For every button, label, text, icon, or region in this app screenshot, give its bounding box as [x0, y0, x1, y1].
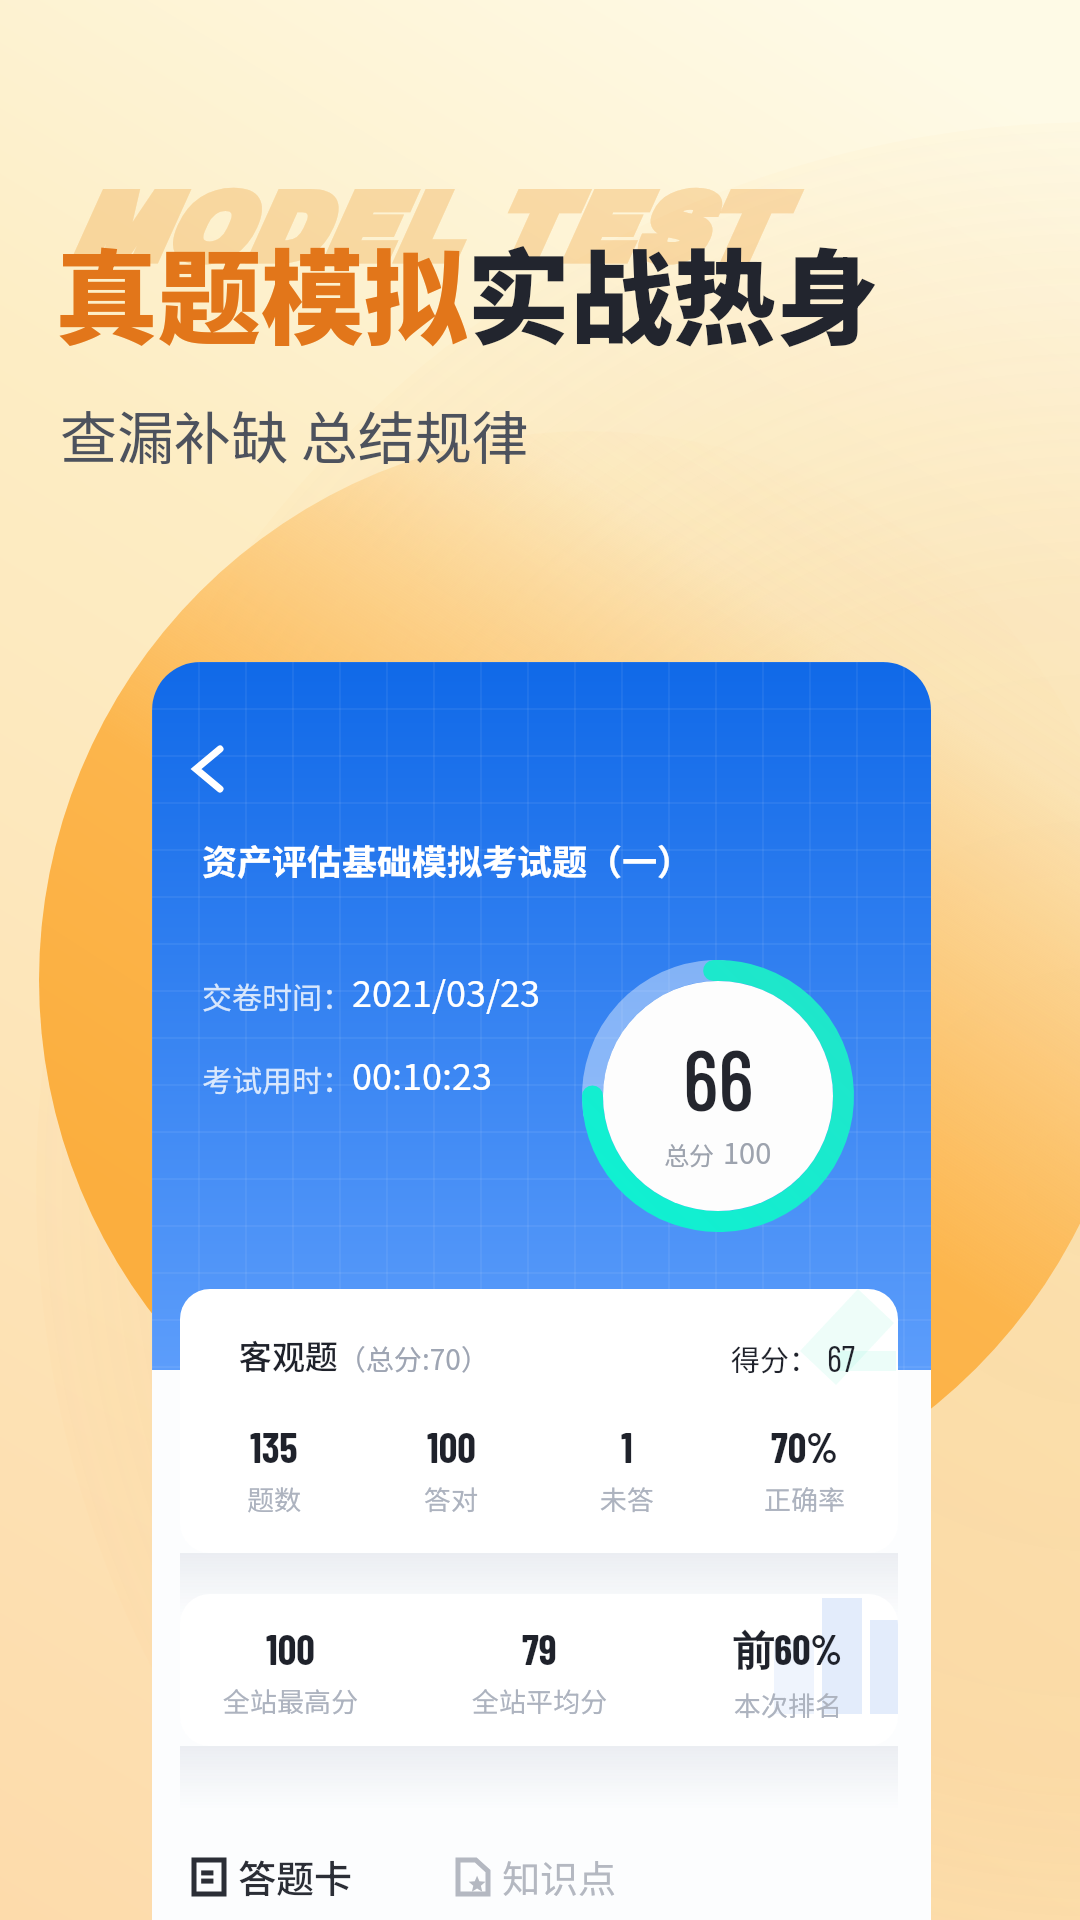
staticText: 未答: [600, 1479, 654, 1518]
staticText: 题数: [247, 1479, 301, 1518]
staticText: 79: [522, 1624, 557, 1673]
staticText: 实战热身: [467, 217, 879, 366]
staticText: 总分: [664, 1136, 715, 1172]
staticText: 全站最高分: [223, 1681, 358, 1720]
staticText: 1: [621, 1422, 633, 1471]
staticText: 真题模拟: [55, 217, 467, 366]
staticText: 2021/03/23: [352, 965, 541, 1017]
staticText: MODEL TEST: [67, 176, 770, 283]
staticText: 全站平均分: [472, 1681, 607, 1720]
staticText: （总分:70）: [338, 1338, 489, 1379]
staticText: 100: [427, 1422, 476, 1471]
staticText: 67: [827, 1336, 855, 1379]
button[interactable]: 知识点: [450, 1845, 623, 1908]
staticText: 本次排名: [734, 1685, 842, 1724]
staticText: 客观题: [239, 1331, 338, 1379]
staticText: 正确率: [764, 1479, 845, 1518]
staticText: 100: [723, 1130, 772, 1172]
staticText: 100: [266, 1624, 315, 1673]
staticText: 00:10:23: [352, 1048, 492, 1100]
button[interactable]: Back: [178, 740, 236, 798]
button[interactable]: 100: [180, 1594, 898, 1746]
button[interactable]: 答题卡: [186, 1845, 359, 1920]
staticText: 前60%: [733, 1624, 843, 1677]
staticText: 70%: [771, 1422, 838, 1471]
button[interactable]: 客观题: [180, 1289, 898, 1553]
staticText: 66: [683, 1027, 754, 1128]
staticText: 考试用时：: [202, 1057, 352, 1100]
staticText: 查漏补缺 总结规律: [60, 393, 529, 476]
staticText: 135: [250, 1422, 298, 1471]
staticText: 资产评估基础模拟考试题（一）: [202, 834, 693, 885]
staticText: 答题卡: [238, 1849, 353, 1904]
staticText: 交卷时间：: [202, 974, 352, 1017]
staticText: 答对: [424, 1479, 478, 1518]
staticText: 得分：: [731, 1337, 819, 1379]
staticText: 知识点: [502, 1849, 617, 1904]
